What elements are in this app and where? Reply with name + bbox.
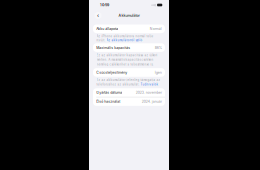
- staticText: 86%: [155, 45, 162, 50]
- staticText: telefonjához az akkumulát.: [96, 83, 140, 86]
- staticText: nyújt.: [96, 39, 106, 42]
- staticText: Ez az akkumulátor kapacitása az újkori: [96, 53, 157, 57]
- staticText: 2024. január: [142, 99, 162, 104]
- staticText: ‹: [97, 12, 99, 19]
- staticText: 10:59: [100, 3, 109, 7]
- staticText: 2023. november: [136, 90, 162, 95]
- staticText: Akkumulátor: [118, 13, 139, 18]
- staticText: Csúcsteljesítmény: [96, 70, 127, 74]
- staticText: némileg csökkenhet a teljesítménye is.: [96, 63, 153, 66]
- staticText: Maximális kapacitás: [96, 45, 130, 50]
- staticText: Az iPhone akkumulátora normál telje: [96, 34, 153, 38]
- staticText: Igen: [155, 70, 162, 74]
- staticText: Normál: [150, 27, 162, 31]
- staticText: Akku állapota: [96, 27, 118, 31]
- button[interactable]: Első használat: [93, 97, 165, 106]
- button[interactable]: Csúcsteljesítmény: [93, 68, 165, 77]
- staticText: Gyártás dátuma: [96, 90, 122, 95]
- button[interactable]: Gyártás dátuma: [93, 88, 165, 97]
- staticText: Tudnivalók: [140, 83, 158, 86]
- staticText: mérten. A maximális kapacitás csökken: [96, 58, 153, 61]
- button[interactable]: Akku állapota: [93, 24, 165, 33]
- button[interactable]: Back: [94, 12, 101, 19]
- staticText: Az akkumulátorról szóló: [106, 39, 142, 42]
- button[interactable]: Maximális kapacitás: [93, 43, 165, 52]
- staticText: Ez az akkumulátor jelenleg támogatja az: [96, 78, 160, 82]
- staticText: Első használat: [96, 99, 120, 104]
